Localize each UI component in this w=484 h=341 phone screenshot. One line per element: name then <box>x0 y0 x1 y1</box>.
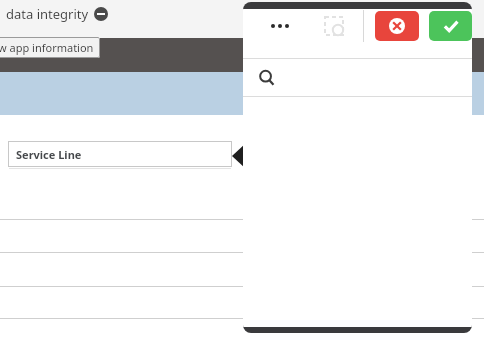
staticText: Service Line <box>16 147 82 162</box>
other: Search <box>258 69 276 87</box>
button[interactable]: Search <box>243 59 472 96</box>
button[interactable]: Confirm <box>429 11 472 41</box>
staticText: w app information <box>0 40 94 55</box>
button[interactable]: w app information <box>0 37 100 58</box>
button[interactable]: Service Line <box>8 141 232 167</box>
button[interactable]: More options <box>263 9 297 43</box>
button[interactable]: Remove <box>94 7 108 21</box>
button[interactable]: Cancel <box>375 11 419 41</box>
button[interactable]: Clear selection <box>317 9 351 43</box>
staticText: data integrity <box>6 5 89 23</box>
